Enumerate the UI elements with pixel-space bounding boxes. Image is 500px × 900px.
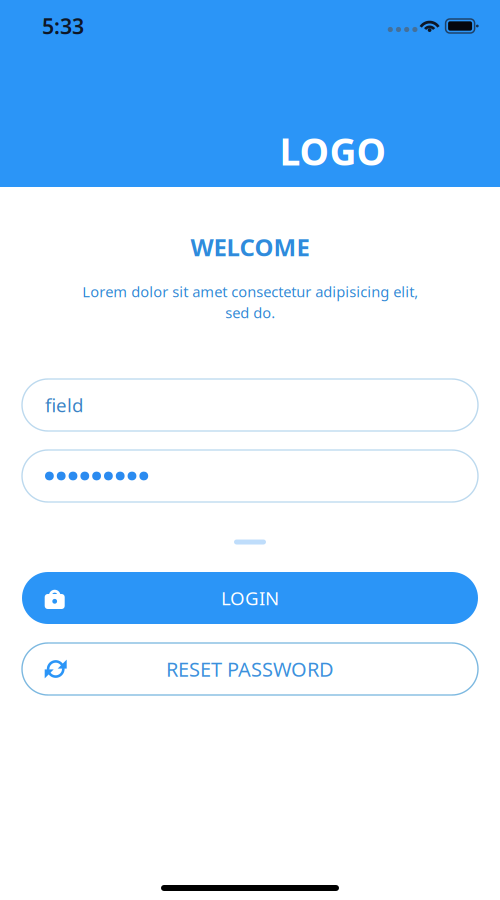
button[interactable]: field [22, 379, 478, 431]
button[interactable]: LOGIN [22, 572, 478, 624]
staticText: field [45, 393, 83, 417]
staticText: Lorem dolor sit amet consectetur adipisi… [82, 282, 418, 322]
staticText: RESET PASSWORD [166, 656, 334, 682]
button[interactable]: Password [22, 450, 478, 502]
staticText: LOGIN [221, 586, 279, 610]
staticText: WELCOME [190, 231, 309, 263]
staticText: LOGO [279, 126, 386, 176]
staticText: 5:33 [42, 12, 84, 40]
button[interactable]: RESET PASSWORD [22, 643, 478, 695]
